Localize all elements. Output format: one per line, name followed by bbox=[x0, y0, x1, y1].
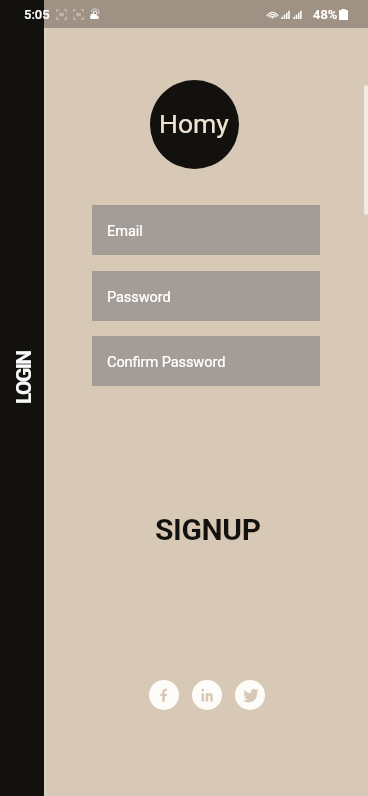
staticText: Confirm Password bbox=[107, 353, 226, 370]
button[interactable]: SIGNUP bbox=[143, 506, 273, 553]
button[interactable]: Twitter bbox=[235, 680, 265, 710]
staticText: Password bbox=[107, 288, 171, 305]
button[interactable]: Password bbox=[92, 271, 320, 321]
button[interactable]: Confirm Password bbox=[92, 336, 320, 386]
staticText: SIGNUP bbox=[155, 512, 261, 547]
button[interactable]: LinkedIn bbox=[192, 680, 222, 710]
button[interactable]: Facebook bbox=[149, 680, 179, 710]
button[interactable]: Email bbox=[92, 205, 320, 255]
staticText: Email bbox=[107, 222, 143, 239]
staticText: Homy bbox=[159, 108, 229, 139]
button[interactable]: LOGIN bbox=[12, 351, 37, 404]
staticText: 5:05 bbox=[24, 7, 50, 22]
staticText: 48% bbox=[313, 7, 338, 22]
staticText: LOGIN bbox=[12, 351, 37, 404]
